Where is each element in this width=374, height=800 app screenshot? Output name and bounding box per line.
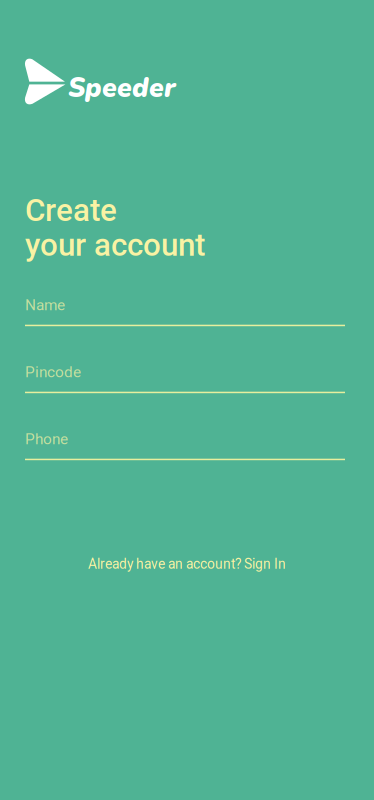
staticText: Phone — [25, 430, 68, 448]
button[interactable]: Already have an account? Sign In — [0, 553, 374, 575]
button[interactable]: Phone — [25, 427, 345, 461]
staticText: Speeder — [68, 70, 176, 106]
button[interactable]: Pincode — [25, 360, 345, 394]
staticText: Create — [25, 192, 117, 229]
staticText: your account — [25, 227, 205, 263]
staticText: Name — [25, 296, 65, 314]
button[interactable]: Name — [25, 293, 345, 327]
staticText: Pincode — [25, 363, 81, 381]
staticText: Already have an account? Sign In — [88, 556, 286, 572]
